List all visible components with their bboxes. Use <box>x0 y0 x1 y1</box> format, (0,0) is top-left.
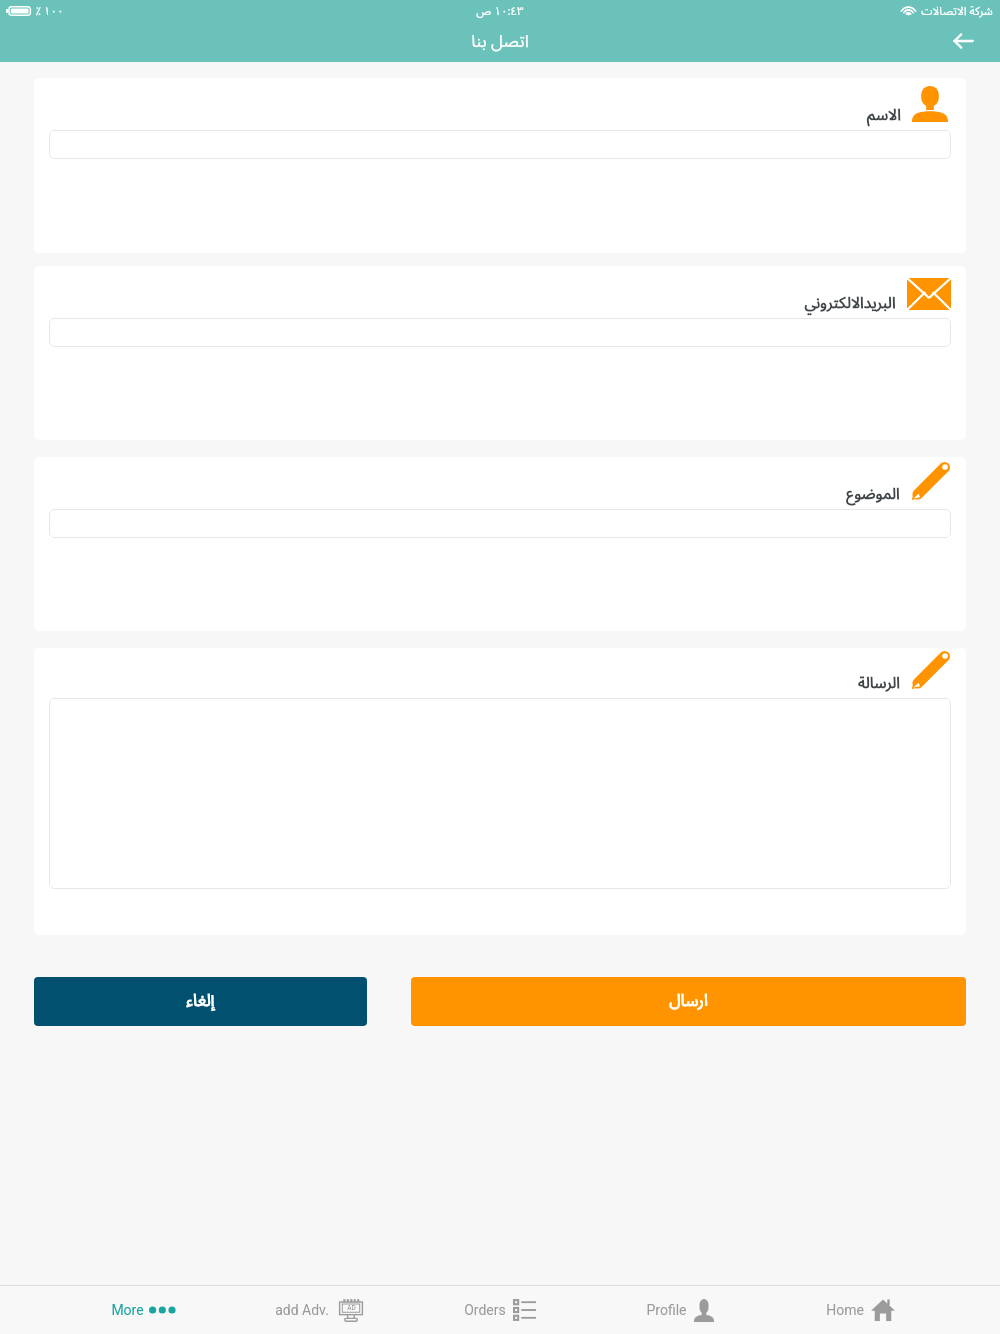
staticText: ارسال <box>669 983 708 1018</box>
staticText: AD <box>347 1304 356 1312</box>
staticText: الموضوع <box>846 478 900 511</box>
staticText: الاسم <box>867 99 901 132</box>
staticText: إلغاء <box>186 983 215 1018</box>
button[interactable]: Orders <box>410 1286 590 1334</box>
button[interactable]: الرسالة <box>34 648 966 935</box>
button[interactable]: add Adv. <box>230 1286 410 1334</box>
staticText: البريدالالكتروني <box>804 287 896 320</box>
button[interactable] <box>49 318 951 347</box>
staticText: ١٠:٤٣ ص <box>476 0 524 23</box>
staticText: اتصل بنا <box>471 24 529 60</box>
staticText: add Adv. <box>275 1302 329 1318</box>
button[interactable] <box>49 509 951 538</box>
button[interactable]: Back <box>945 23 981 59</box>
staticText: ٪ ١٠٠ <box>35 0 64 23</box>
staticText: Orders <box>464 1302 506 1318</box>
staticText: Home <box>826 1302 864 1318</box>
staticText: شركة الاتصالات <box>921 0 993 23</box>
button[interactable]: الموضوع <box>34 457 966 631</box>
staticText: الرسالة <box>858 667 900 700</box>
staticText: Profile <box>646 1302 687 1318</box>
button[interactable]: More <box>50 1286 230 1334</box>
button[interactable]: إلغاء <box>34 977 367 1026</box>
button[interactable]: ارسال <box>411 977 966 1026</box>
button[interactable]: البريدالالكتروني <box>34 266 966 440</box>
button[interactable] <box>49 130 951 159</box>
staticText: More <box>111 1302 144 1318</box>
button[interactable]: Profile <box>590 1286 770 1334</box>
button[interactable]: الاسم <box>34 78 966 253</box>
button[interactable]: Home <box>770 1286 950 1334</box>
